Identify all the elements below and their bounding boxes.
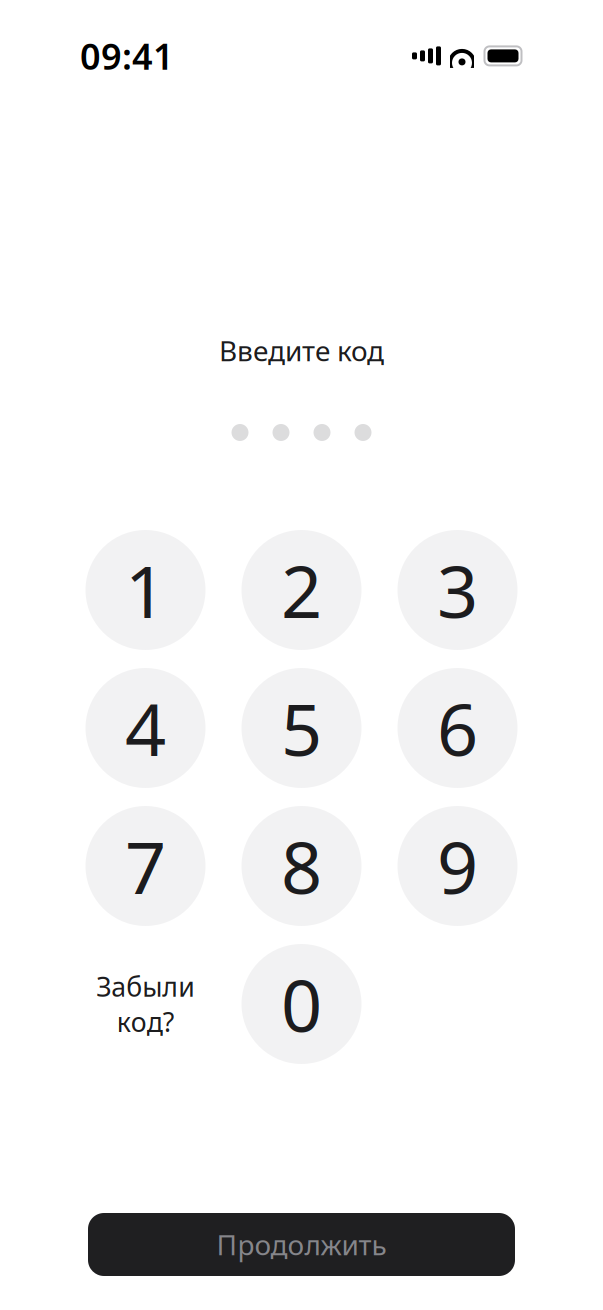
button[interactable]: 0 [241, 944, 361, 1064]
button[interactable]: 4 [85, 668, 205, 788]
staticText: 1 [125, 542, 166, 638]
button[interactable]: 5 [241, 668, 361, 788]
button[interactable]: Забыли код? [85, 944, 205, 1064]
button[interactable]: 6 [397, 668, 517, 788]
button[interactable]: 8 [241, 806, 361, 926]
button[interactable]: 7 [85, 806, 205, 926]
staticText: Забыли код? [96, 969, 195, 1039]
button[interactable]: 2 [241, 530, 361, 650]
staticText: 4 [125, 680, 166, 776]
staticText: 7 [125, 818, 166, 914]
button[interactable]: 1 [85, 530, 205, 650]
staticText: 6 [437, 680, 478, 776]
staticText: Введите код [219, 332, 384, 369]
staticText: 5 [281, 680, 322, 776]
staticText: 2 [281, 542, 322, 638]
staticText: 8 [281, 818, 322, 914]
staticText: Продолжить [216, 1226, 386, 1263]
staticText: 3 [437, 542, 478, 638]
button[interactable]: 9 [397, 806, 517, 926]
staticText: 09:41 [80, 32, 174, 80]
button[interactable]: Продолжить [88, 1213, 515, 1276]
button[interactable]: 3 [397, 530, 517, 650]
staticText: 9 [437, 818, 478, 914]
staticText: 0 [281, 956, 322, 1052]
